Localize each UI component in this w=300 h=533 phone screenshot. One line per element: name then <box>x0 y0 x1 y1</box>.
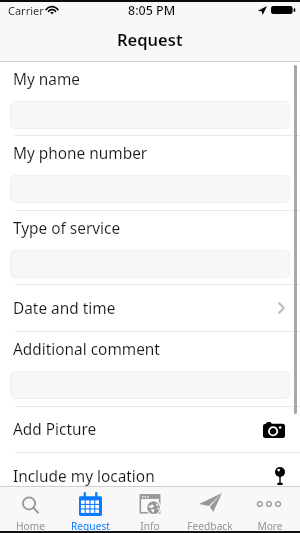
other: Include my location <box>275 467 285 485</box>
button[interactable]: Home <box>0 487 60 533</box>
button[interactable]: Include my location <box>0 453 300 486</box>
button[interactable]: Info <box>120 487 180 533</box>
staticText: My phone number <box>13 143 148 164</box>
button[interactable]: Feedback <box>180 487 240 533</box>
other: Add picture <box>263 422 285 438</box>
staticText: Home <box>16 519 45 533</box>
button[interactable]: Type of service <box>0 211 300 284</box>
staticText: Request <box>117 28 183 50</box>
staticText: Info <box>140 519 160 533</box>
staticText: Feedback <box>187 519 233 533</box>
staticText: Request <box>71 519 110 533</box>
button[interactable]: Add Picture <box>0 407 300 452</box>
staticText: Additional comment <box>13 339 160 360</box>
staticText: Carrier <box>8 3 44 18</box>
staticText: My name <box>13 69 81 90</box>
staticText: Add Picture <box>13 419 97 440</box>
button[interactable]: My phone number <box>0 136 300 210</box>
button[interactable]: My name <box>0 62 300 135</box>
button[interactable]: More <box>240 487 300 533</box>
staticText: Type of service <box>13 218 121 239</box>
staticText: 8:05 PM <box>128 2 176 19</box>
other: Choose date and time <box>278 302 285 314</box>
button[interactable]: Additional comment <box>0 332 300 406</box>
staticText: Include my location <box>13 466 155 486</box>
button[interactable]: Date and time <box>0 285 300 331</box>
staticText: More <box>257 519 283 533</box>
button[interactable]: Request <box>60 487 120 533</box>
staticText: Date and time <box>13 298 116 319</box>
